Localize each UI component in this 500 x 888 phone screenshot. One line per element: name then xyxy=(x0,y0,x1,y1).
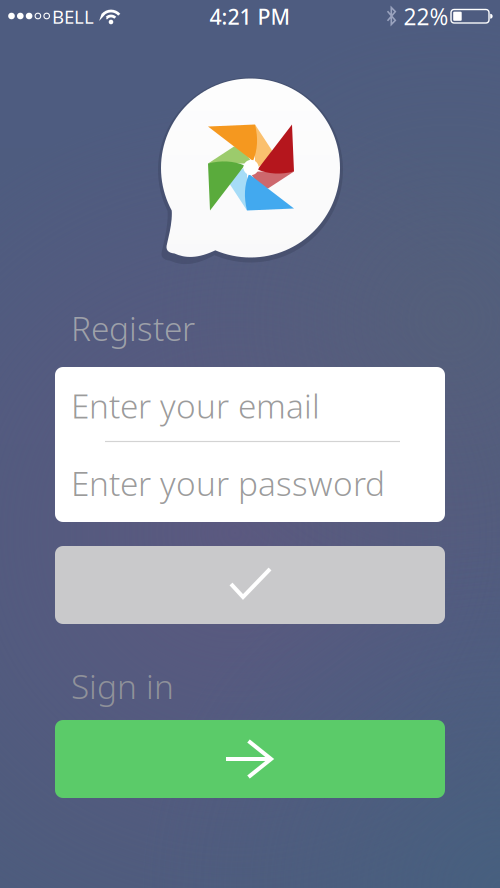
button[interactable]: Enter your email xyxy=(55,367,445,444)
button[interactable]: Enter your password xyxy=(55,444,445,521)
staticText: Enter your password xyxy=(71,461,385,505)
button[interactable]: Sign in xyxy=(55,720,445,798)
button[interactable]: Submit registration xyxy=(55,546,445,624)
staticText: Register xyxy=(71,306,195,350)
staticText: 22% xyxy=(403,1,448,31)
staticText: BELL xyxy=(52,4,94,29)
staticText: Enter your email xyxy=(71,383,320,428)
staticText: 4:21 PM xyxy=(209,2,290,31)
staticText: Sign in xyxy=(71,664,174,708)
